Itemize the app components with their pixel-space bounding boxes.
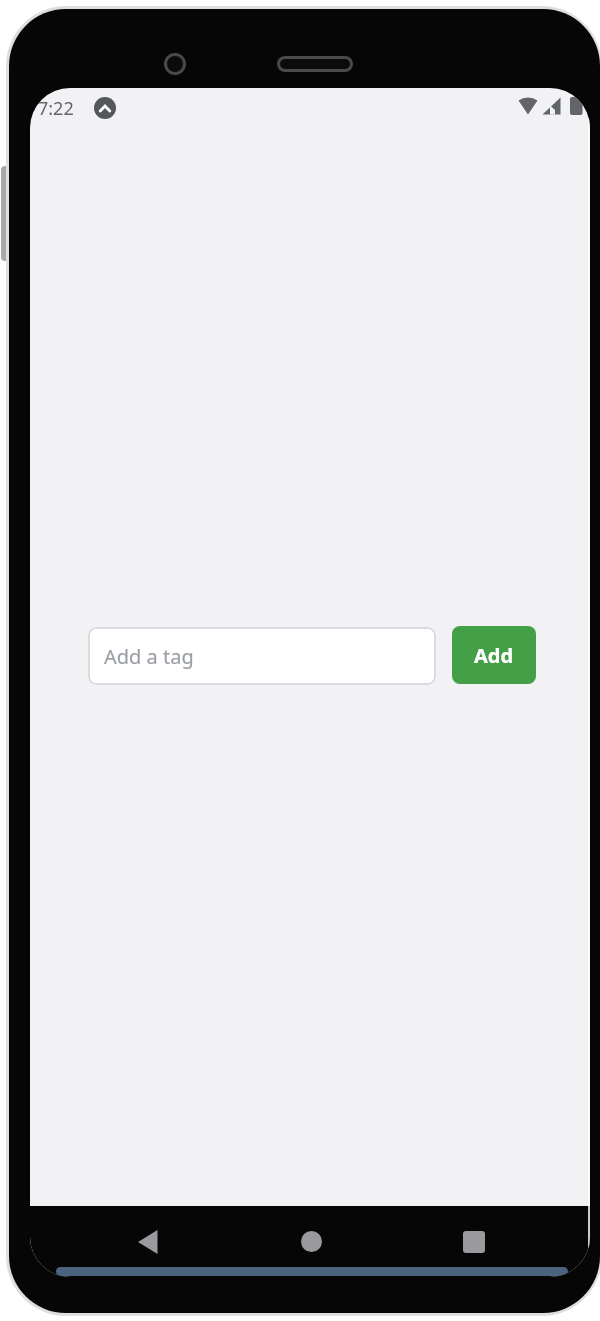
button[interactable]: Add [452, 626, 536, 684]
button[interactable] [301, 1231, 322, 1252]
button[interactable] [130, 1228, 170, 1258]
staticText: Add a tag [104, 643, 194, 670]
button[interactable] [463, 1231, 485, 1253]
staticText: 7:22 [38, 96, 74, 121]
button[interactable]: Add a tag [88, 627, 436, 685]
staticText: Add [474, 642, 514, 669]
